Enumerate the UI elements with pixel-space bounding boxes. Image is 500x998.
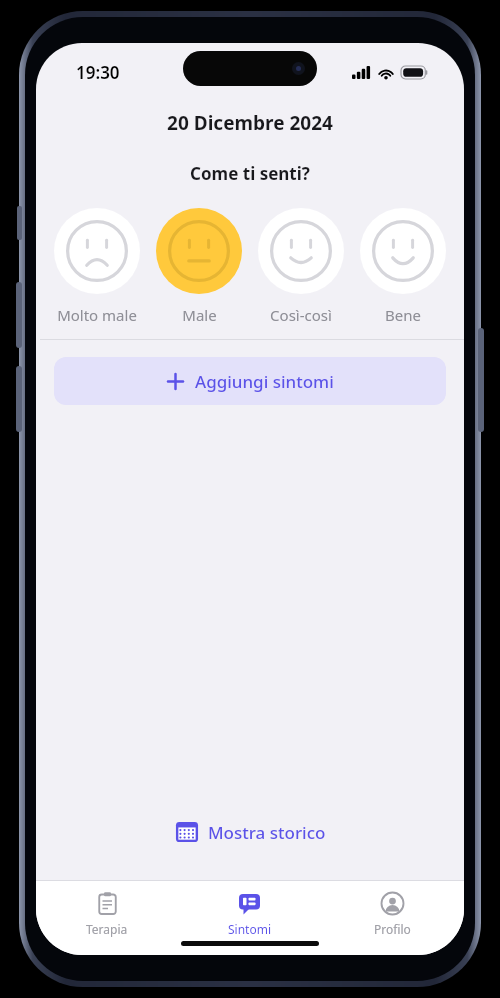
button[interactable]: Bene xyxy=(352,206,454,327)
button[interactable]: Mostra storico xyxy=(167,815,334,849)
staticText: Terapia xyxy=(86,921,128,937)
button[interactable]: Terapia xyxy=(36,887,178,941)
staticText: Profilo xyxy=(374,921,411,937)
button[interactable]: Così-così xyxy=(250,206,352,327)
button[interactable]: Profilo xyxy=(321,887,464,941)
staticText: 19:30 xyxy=(76,61,120,84)
staticText: Come ti senti? xyxy=(36,162,464,185)
staticText: Aggiungi sintomi xyxy=(195,370,334,393)
staticText: Male xyxy=(182,305,217,325)
staticText: Mostra storico xyxy=(208,821,326,844)
staticText: Così-così xyxy=(270,305,332,325)
staticText: Molto male xyxy=(57,305,137,325)
button[interactable]: Aggiungi sintomi xyxy=(54,357,446,405)
staticText: Bene xyxy=(385,305,421,325)
button[interactable]: Molto male xyxy=(46,206,148,327)
staticText: Sintomi xyxy=(228,921,272,937)
staticText: 20 Dicembre 2024 xyxy=(36,110,464,136)
button[interactable]: Male xyxy=(148,206,250,327)
button[interactable]: Sintomi xyxy=(178,887,321,941)
